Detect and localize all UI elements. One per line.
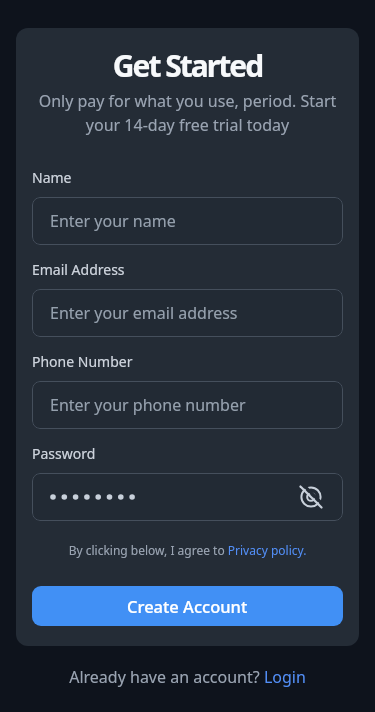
button[interactable]: Create Account (32, 586, 343, 626)
button[interactable]: Enter your name (32, 197, 343, 245)
staticText: Enter your email address (50, 302, 238, 324)
staticText: Phone Number (32, 352, 133, 371)
staticText: Name (32, 168, 72, 187)
staticText: Email Address (32, 260, 125, 279)
button[interactable]: Enter your email address (32, 289, 343, 337)
button[interactable] (299, 485, 323, 509)
button[interactable]: Already have an account? Login (0, 666, 375, 688)
button[interactable]: By clicking below, I agree to Privacy po… (32, 542, 343, 558)
staticText: Enter your name (50, 210, 176, 232)
button[interactable]: Enter your phone number (32, 381, 343, 429)
staticText: Create Account (127, 595, 248, 617)
button[interactable] (32, 473, 343, 521)
staticText: Get Started (32, 45, 343, 86)
staticText: Password (32, 444, 96, 463)
staticText: Enter your phone number (50, 394, 246, 416)
staticText: Only pay for what you use, period. Start… (32, 90, 343, 136)
